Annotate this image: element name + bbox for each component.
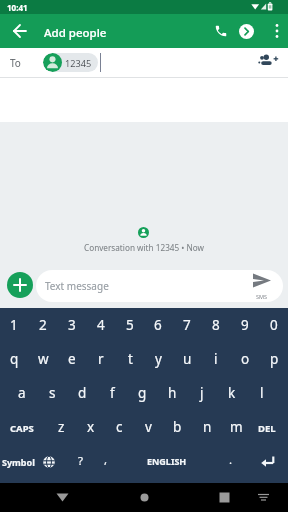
button[interactable]: ?: [67, 447, 93, 475]
button[interactable]: x: [77, 413, 104, 441]
button[interactable]: [37, 449, 61, 473]
staticText: v: [145, 418, 152, 436]
button[interactable]: t: [116, 345, 144, 373]
button[interactable]: v: [135, 413, 162, 441]
staticText: CAPS: [10, 422, 34, 435]
staticText: Symbol: [2, 456, 35, 468]
button[interactable]: i: [202, 345, 230, 373]
button[interactable]: [210, 483, 238, 512]
button[interactable]: a: [8, 379, 36, 407]
button[interactable]: [48, 483, 76, 512]
button[interactable]: p: [260, 345, 288, 373]
staticText: i: [214, 350, 218, 368]
button[interactable]: 9: [231, 311, 259, 339]
button[interactable]: j: [188, 379, 216, 407]
button[interactable]: w: [29, 345, 57, 373]
button[interactable]: u: [173, 345, 201, 373]
staticText: t: [128, 350, 133, 368]
button[interactable]: Symbol: [1, 448, 35, 476]
staticText: 6: [154, 316, 162, 334]
staticText: w: [38, 350, 49, 368]
button[interactable]: k: [218, 379, 246, 407]
button[interactable]: 6: [144, 311, 172, 339]
button[interactable]: 5: [116, 311, 144, 339]
button[interactable]: l: [248, 379, 276, 407]
staticText: e: [68, 350, 76, 368]
button[interactable]: n: [194, 413, 221, 441]
button[interactable]: y: [144, 345, 172, 373]
staticText: r: [98, 350, 104, 368]
button[interactable]: 12345: [43, 53, 98, 72]
button[interactable]: [130, 483, 159, 512]
staticText: Text message: [45, 279, 109, 293]
staticText: a: [18, 384, 26, 402]
button[interactable]: [256, 449, 280, 473]
button[interactable]: DEL: [249, 414, 285, 442]
button[interactable]: 1: [0, 311, 28, 339]
button[interactable]: Text message: [36, 270, 283, 302]
staticText: o: [241, 350, 250, 368]
staticText: 5: [126, 316, 134, 334]
staticText: 3: [68, 316, 76, 334]
staticText: DEL: [258, 422, 276, 435]
staticText: f: [110, 384, 115, 402]
button[interactable]: [266, 17, 288, 45]
button[interactable]: [7, 272, 33, 298]
button[interactable]: 2: [29, 311, 57, 339]
button[interactable]: g: [128, 379, 156, 407]
button[interactable]: [6, 17, 34, 45]
staticText: 8: [212, 316, 220, 334]
button[interactable]: 8: [202, 311, 230, 339]
staticText: ?: [78, 453, 83, 469]
staticText: y: [155, 350, 162, 368]
staticText: q: [10, 350, 19, 368]
button[interactable]: ,: [94, 446, 118, 474]
staticText: To: [10, 56, 21, 70]
button[interactable]: d: [68, 379, 96, 407]
button[interactable]: q: [0, 345, 28, 373]
staticText: m: [230, 418, 243, 436]
staticText: 2: [39, 316, 47, 334]
button[interactable]: CAPS: [2, 414, 42, 442]
button[interactable]: 7: [173, 311, 201, 339]
button[interactable]: [239, 24, 254, 39]
button[interactable]: f: [98, 379, 126, 407]
button[interactable]: o: [231, 345, 259, 373]
staticText: h: [168, 384, 177, 402]
button[interactable]: [254, 51, 280, 75]
button[interactable]: 0: [260, 311, 288, 339]
staticText: Add people: [44, 25, 107, 41]
staticText: c: [116, 418, 123, 436]
button[interactable]: z: [48, 413, 75, 441]
staticText: n: [203, 418, 212, 436]
button[interactable]: s: [38, 379, 66, 407]
button[interactable]: .: [219, 446, 243, 474]
staticText: p: [270, 350, 279, 368]
button[interactable]: m: [223, 413, 250, 441]
staticText: 1: [10, 316, 18, 334]
button[interactable]: h: [158, 379, 186, 407]
staticText: 4: [97, 316, 105, 334]
button[interactable]: ENGLISH: [122, 447, 212, 475]
button[interactable]: [207, 17, 235, 45]
staticText: 12345: [65, 57, 92, 70]
staticText: 7: [183, 316, 191, 334]
staticText: g: [138, 384, 147, 402]
staticText: Conversation with 12345 • Now: [84, 242, 204, 253]
button[interactable]: 3: [58, 311, 86, 339]
staticText: x: [87, 418, 95, 436]
staticText: 9: [241, 316, 249, 334]
button[interactable]: r: [87, 345, 115, 373]
button[interactable]: e: [58, 345, 86, 373]
button[interactable]: b: [164, 413, 191, 441]
staticText: k: [228, 384, 236, 402]
staticText: 10:41: [7, 2, 28, 13]
staticText: ,: [104, 452, 108, 468]
staticText: u: [183, 350, 192, 368]
button[interactable]: [252, 483, 276, 512]
staticText: j: [200, 384, 204, 402]
button[interactable]: c: [106, 413, 133, 441]
staticText: .: [229, 452, 233, 468]
button[interactable]: 4: [87, 311, 115, 339]
staticText: d: [78, 384, 87, 402]
